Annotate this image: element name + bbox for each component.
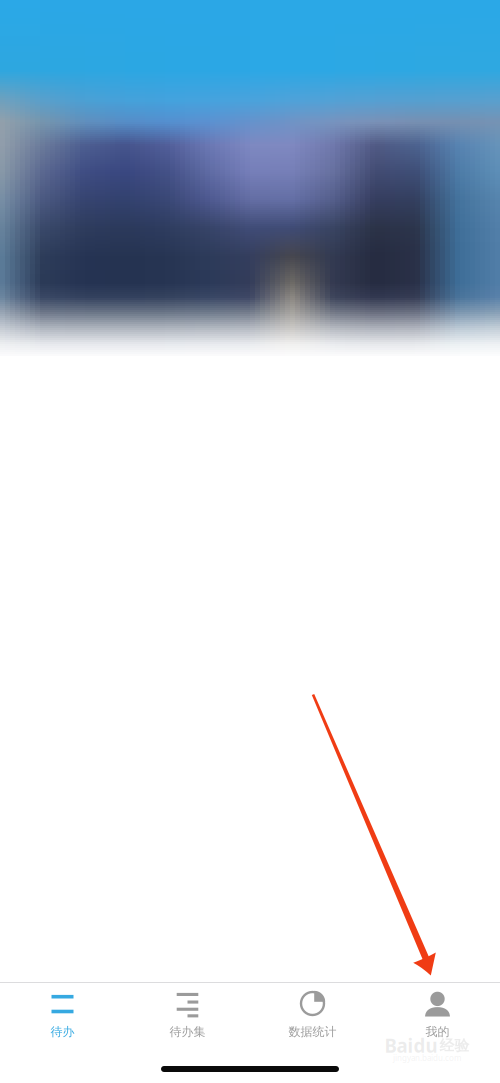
button[interactable]: 待办集 (125, 982, 250, 1044)
button[interactable]: 数据统计 (250, 982, 375, 1044)
staticText: Baidu (384, 1033, 437, 1058)
staticText: 经验 (439, 1036, 469, 1054)
staticText: 数据统计 (288, 1024, 336, 1039)
staticText: jingyan.baidu.com (393, 1053, 461, 1063)
button[interactable]: 我的 (375, 982, 500, 1044)
staticText: 待办集 (169, 1024, 205, 1039)
staticText: 待办 (50, 1024, 74, 1039)
button[interactable]: 待办 (0, 982, 125, 1044)
staticText: 我的 (425, 1024, 449, 1039)
